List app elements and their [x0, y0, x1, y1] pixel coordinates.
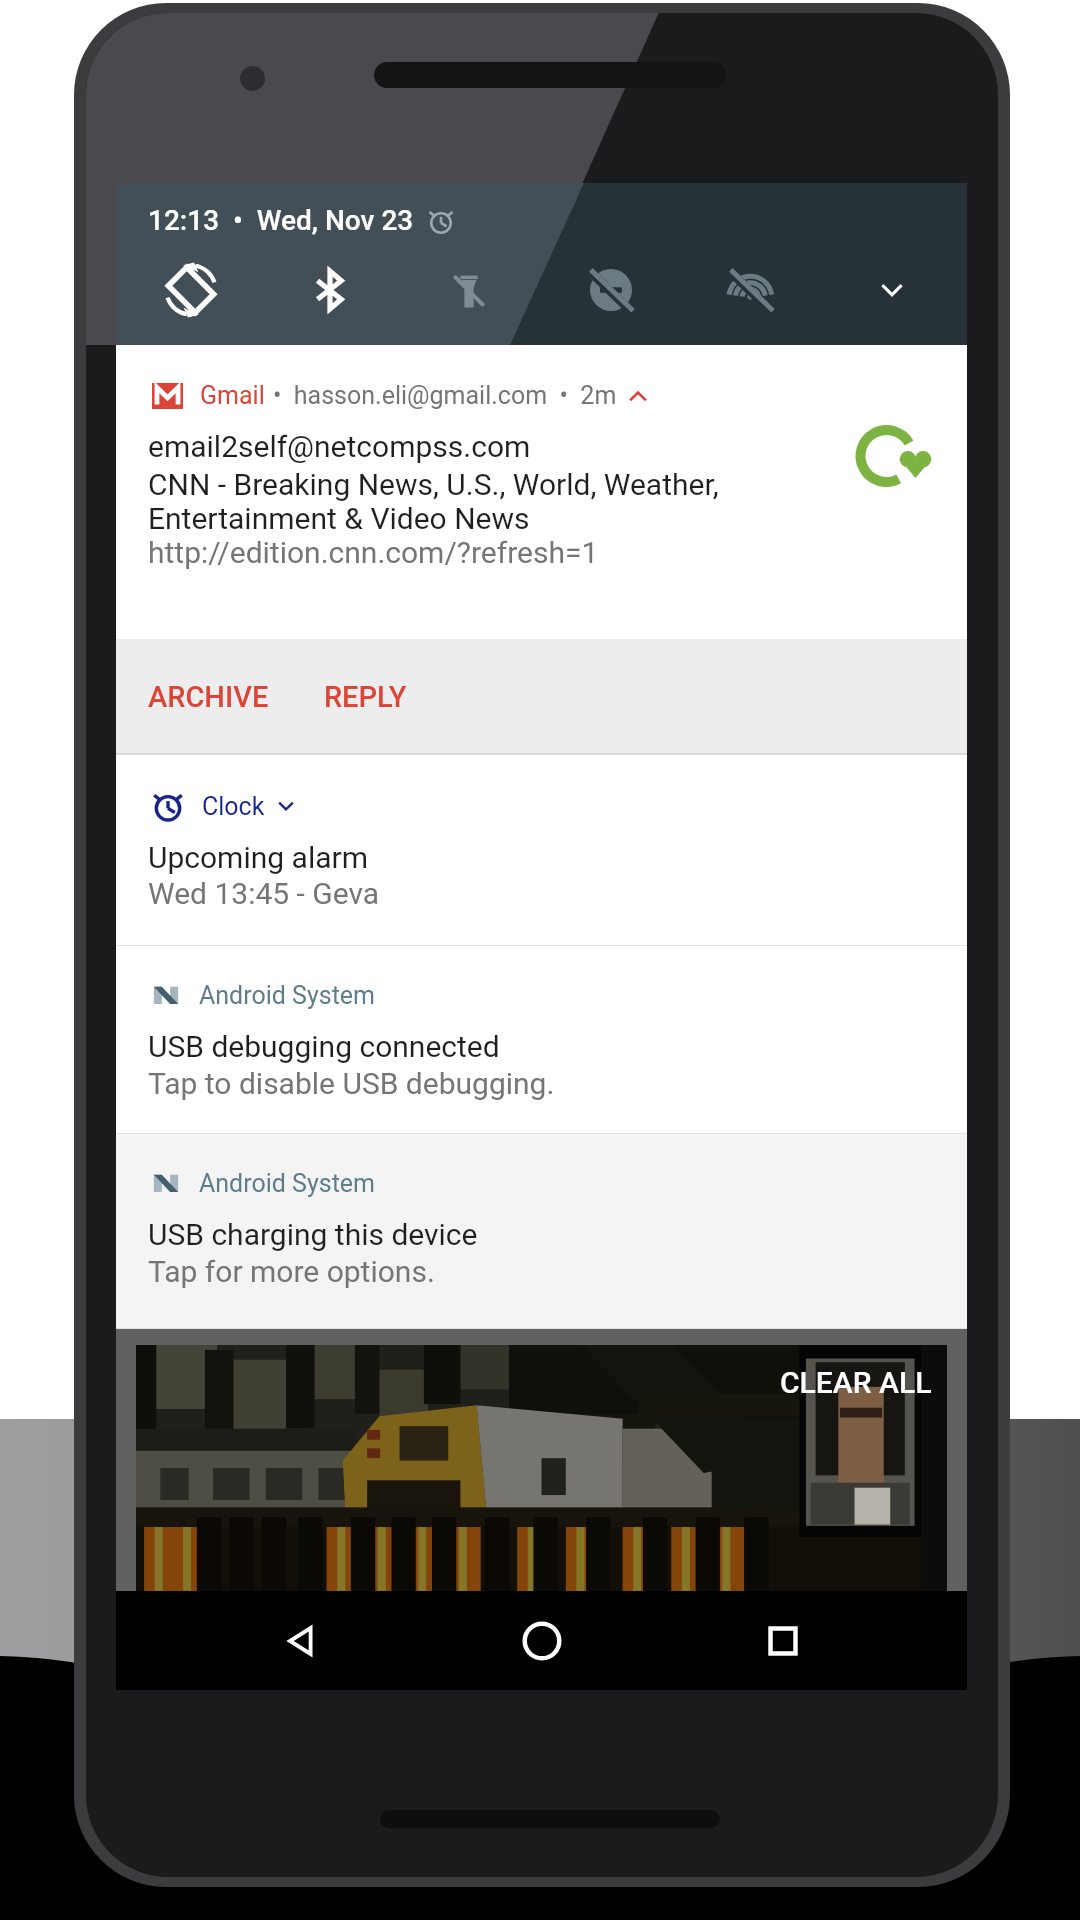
button[interactable]: Expand quick settings: [860, 258, 924, 322]
staticText: Upcoming alarm: [148, 840, 368, 875]
button[interactable]: Auto rotate: [159, 258, 223, 322]
button[interactable]: Android System: [116, 1134, 967, 1329]
staticText: Android System: [199, 981, 376, 1010]
staticText: CLEAR ALL: [780, 1365, 932, 1400]
button[interactable]: Recent apps: [759, 1617, 807, 1665]
staticText: Entertainment & Video News: [148, 501, 530, 536]
staticText: ARCHIVE: [148, 680, 269, 714]
button[interactable]: CLEAR ALL: [766, 1357, 946, 1408]
staticText: email2self@netcompss.com: [148, 429, 531, 464]
button[interactable]: REPLY: [295, 652, 433, 742]
button[interactable]: Do not disturb off: [579, 258, 643, 322]
staticText: Wed 13:45 - Geva: [148, 876, 380, 911]
button[interactable]: Gmail: [116, 345, 967, 639]
button[interactable]: Flashlight off: [437, 258, 501, 322]
button[interactable]: ARCHIVE: [116, 652, 295, 742]
staticText: Clock: [202, 792, 265, 821]
staticText: Gmail: [200, 381, 265, 410]
staticText: Tap to disable USB debugging.: [148, 1066, 555, 1101]
staticText: Tap for more options.: [148, 1254, 435, 1289]
button[interactable]: Android System: [116, 946, 967, 1134]
staticText: REPLY: [324, 680, 407, 714]
button[interactable]: Home: [518, 1617, 566, 1665]
staticText: Android System: [199, 1169, 376, 1198]
button[interactable]: Bluetooth: [298, 258, 362, 322]
button[interactable]: Clock: [116, 755, 967, 946]
staticText: CNN - Breaking News, U.S., World, Weathe…: [148, 467, 719, 502]
button[interactable]: Cast off: [719, 258, 783, 322]
staticText: • hasson.eli@gmail.com • 2m: [273, 381, 617, 410]
staticText: USB debugging connected: [148, 1029, 500, 1064]
button[interactable]: Back: [277, 1617, 325, 1665]
staticText: http://edition.cnn.com/?refresh=1: [148, 535, 599, 570]
staticText: 12:13 • Wed, Nov 23: [148, 204, 414, 237]
staticText: USB charging this device: [148, 1217, 478, 1252]
